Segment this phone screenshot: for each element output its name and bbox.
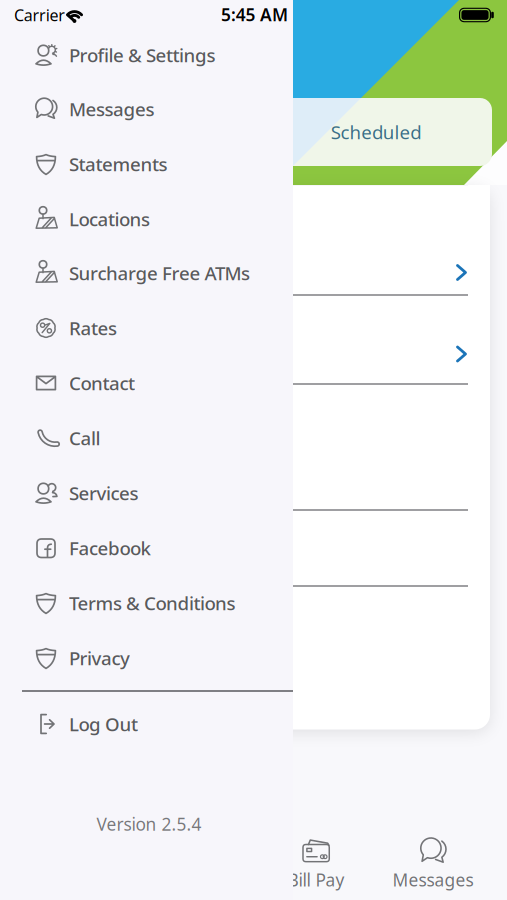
staticText: Messages xyxy=(392,868,473,891)
staticText: Facebook xyxy=(69,536,150,560)
staticText: 5:45 AM xyxy=(221,3,288,26)
button[interactable]: Facebook xyxy=(0,521,293,575)
staticText: Statements xyxy=(69,152,167,176)
button[interactable]: Scheduled xyxy=(296,98,456,166)
staticText: Privacy xyxy=(69,646,130,670)
button[interactable]: Services xyxy=(0,466,293,520)
staticText: Version 2.5.4 xyxy=(96,812,201,835)
staticText: Bill Pay xyxy=(287,868,344,891)
button[interactable]: Call xyxy=(0,411,293,465)
staticText: Profile & Settings xyxy=(69,43,215,67)
staticText: Surcharge Free ATMs xyxy=(69,261,250,285)
staticText: Carrier xyxy=(14,4,65,26)
button[interactable]: Messages xyxy=(0,82,293,136)
button[interactable]: Payment details xyxy=(20,186,490,295)
staticText: Rates xyxy=(69,316,117,340)
staticText: Services xyxy=(69,481,138,505)
button[interactable]: Bill Pay xyxy=(261,831,371,895)
staticText: Messages xyxy=(69,97,154,121)
staticText: Scheduled xyxy=(331,120,421,144)
button[interactable]: Payment details xyxy=(20,295,490,384)
staticText: Log Out xyxy=(69,712,138,736)
staticText: Locations xyxy=(69,207,150,231)
staticText: Contact xyxy=(69,371,135,395)
button[interactable]: Privacy xyxy=(0,631,293,685)
staticText: Call xyxy=(69,426,100,450)
button[interactable]: Profile & Settings xyxy=(0,28,293,82)
button[interactable]: Terms & Conditions xyxy=(0,576,293,630)
button[interactable]: Log Out xyxy=(0,697,293,751)
staticText: Terms & Conditions xyxy=(69,591,235,615)
button[interactable]: Messages xyxy=(378,831,488,895)
button[interactable]: Rates xyxy=(0,301,293,355)
button[interactable]: Surcharge Free ATMs xyxy=(0,246,293,300)
button[interactable]: Locations xyxy=(0,192,293,246)
button[interactable]: Statements xyxy=(0,137,293,191)
button[interactable]: Contact xyxy=(0,356,293,410)
